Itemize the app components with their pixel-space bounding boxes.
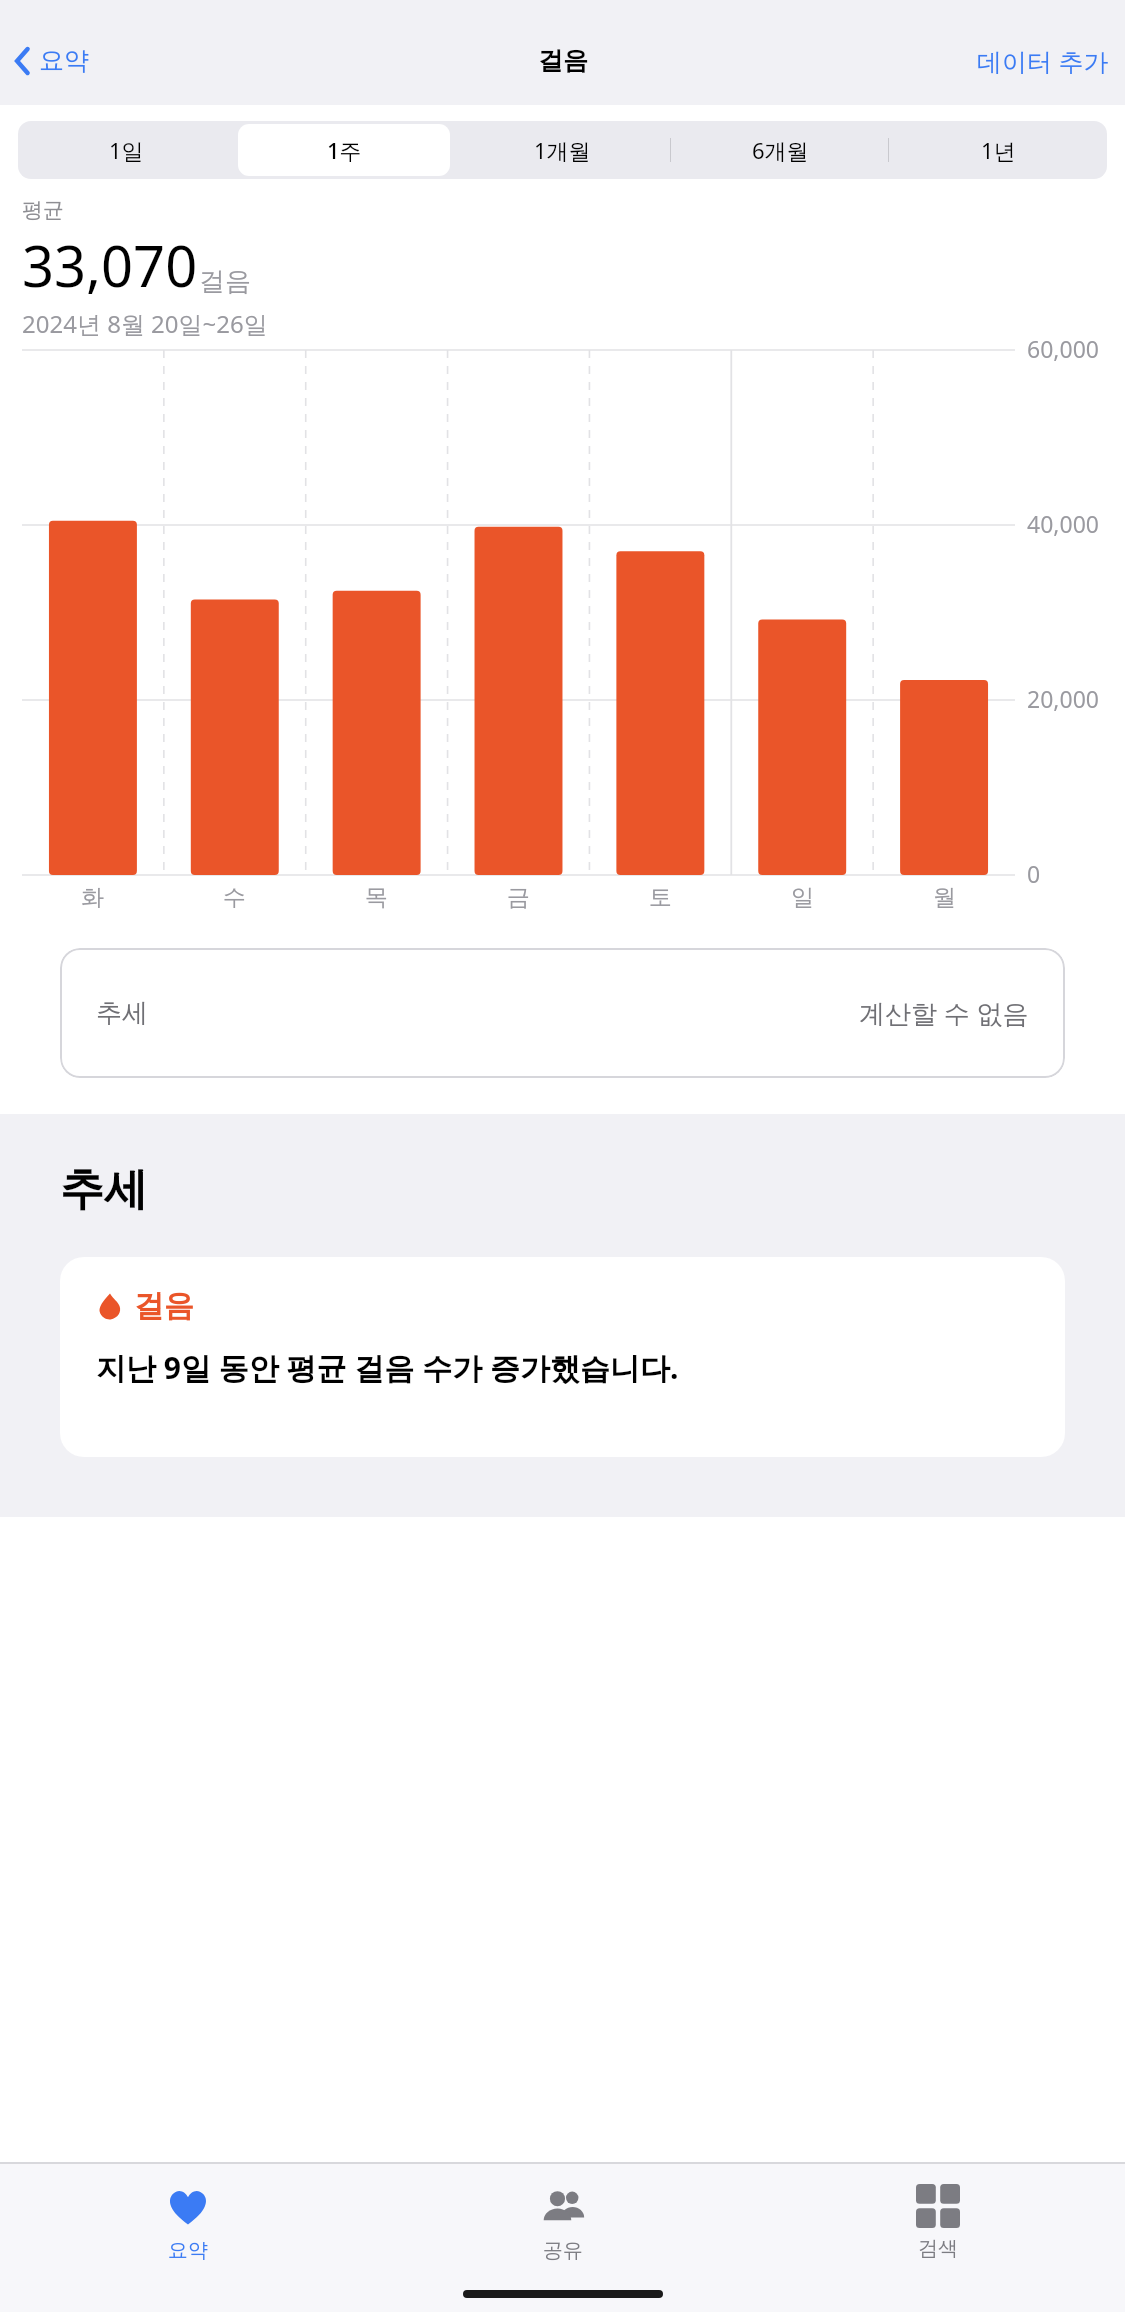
staticText: 걸음 <box>538 45 588 76</box>
staticText: 지난 9일 동안 평균 걸음 수가 증가했습니다. <box>96 1347 679 1388</box>
staticText: 요약 <box>39 45 89 76</box>
staticText: 추세 <box>60 1162 148 1217</box>
staticText: 평균 <box>22 197 64 223</box>
staticText: 검색 <box>918 2236 958 2261</box>
staticText: 40,000 <box>1027 508 1099 539</box>
button[interactable]: 1년 <box>892 124 1104 176</box>
staticText: 일 <box>791 883 814 912</box>
staticText: 데이터 추가 <box>977 44 1109 78</box>
button[interactable]: 1개월 <box>456 124 668 176</box>
staticText: 요약 <box>168 2238 208 2263</box>
staticText: 1년 <box>981 135 1016 165</box>
button[interactable]: 요약 <box>0 39 99 82</box>
staticText: 6개월 <box>752 135 809 165</box>
staticText: 걸음 <box>199 265 251 298</box>
staticText: 수 <box>223 883 246 912</box>
staticText: 33,070 <box>22 227 198 303</box>
staticText: 0 <box>1027 858 1041 889</box>
staticText: 1개월 <box>534 135 591 165</box>
staticText: 계산할 수 없음 <box>859 995 1029 1031</box>
staticText: 월 <box>933 883 956 912</box>
staticText: 걸음 <box>134 1287 194 1325</box>
staticText: 목 <box>365 883 388 912</box>
button[interactable]: 요약 <box>0 2178 375 2269</box>
staticText: 금 <box>507 883 530 912</box>
button[interactable]: 공유 <box>375 2178 750 2269</box>
staticText: 1일 <box>109 135 144 165</box>
button[interactable]: 1일 <box>21 124 232 176</box>
staticText: 20,000 <box>1027 683 1099 714</box>
button[interactable]: 1주 <box>238 124 450 176</box>
staticText: 토 <box>649 883 672 912</box>
staticText: 공유 <box>543 2238 583 2263</box>
staticText: 추세 <box>96 997 148 1030</box>
button[interactable]: 걸음 <box>60 1257 1065 1457</box>
button[interactable]: 검색 <box>750 2178 1125 2267</box>
staticText: 화 <box>81 883 104 912</box>
staticText: 2024년 8월 20일~26일 <box>22 307 268 340</box>
staticText: 60,000 <box>1027 333 1099 364</box>
staticText: 1주 <box>327 135 362 165</box>
button[interactable]: 데이터 추가 <box>961 36 1125 86</box>
button[interactable]: 6개월 <box>674 124 886 176</box>
button[interactable]: 추세 <box>60 948 1065 1078</box>
